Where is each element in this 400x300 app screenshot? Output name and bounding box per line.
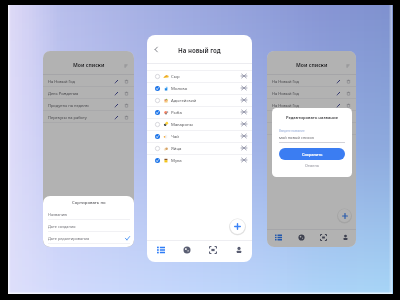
staticText: Мука	[171, 157, 182, 163]
button[interactable]: День Рождения	[43, 87, 134, 99]
staticText: На Новый Год	[272, 115, 300, 120]
button[interactable]: Молоко	[147, 82, 252, 94]
button[interactable]: На Новый Год	[267, 123, 356, 135]
staticText: На Новый Год	[272, 79, 300, 84]
button[interactable]: Reorder	[240, 96, 248, 104]
button[interactable]: Profile	[226, 241, 252, 258]
button[interactable]: На Новый Год	[43, 75, 134, 87]
staticText: Редактировать название	[279, 115, 345, 121]
button[interactable]: Reorder	[240, 72, 248, 80]
button[interactable]: Edit	[112, 113, 120, 121]
button[interactable]: Delete	[344, 101, 352, 109]
button[interactable]: Чай	[147, 130, 252, 142]
staticText: Перекусы на работу	[48, 115, 87, 120]
staticText: Сохранить	[302, 152, 323, 157]
button[interactable]: Back	[151, 44, 162, 55]
staticText: Адыгейский	[171, 97, 197, 103]
button[interactable]: Add	[338, 209, 351, 222]
staticText: Мои списки	[296, 62, 328, 69]
button[interactable]: Edit	[112, 101, 120, 109]
button[interactable]: Дате редактирования	[43, 232, 134, 244]
button[interactable]: Scan	[200, 241, 226, 258]
button[interactable]: Edit	[334, 101, 342, 109]
button[interactable]: Delete	[122, 77, 130, 85]
staticText: День Рождения	[48, 91, 79, 96]
staticText: Молоко	[171, 85, 188, 91]
button[interactable]: Перекусы на работу	[43, 111, 134, 123]
button[interactable]: Delete	[122, 113, 130, 121]
staticText: Введите название	[279, 129, 305, 133]
button[interactable]: Add	[230, 219, 245, 234]
staticText: Макароны	[171, 121, 193, 127]
button[interactable]: Scan	[312, 230, 334, 244]
staticText: На Новый Год	[272, 91, 300, 96]
button[interactable]: Edit	[334, 77, 342, 85]
staticText: Рыба	[171, 109, 182, 115]
button[interactable]: Explore	[174, 241, 200, 258]
button[interactable]: На Новый Год	[267, 87, 356, 99]
staticText: Названию	[48, 212, 68, 217]
button[interactable]: Explore	[290, 230, 312, 244]
staticText: На новый год	[178, 46, 221, 54]
button[interactable]: Edit	[334, 89, 342, 97]
button[interactable]: Reorder	[240, 108, 248, 116]
button[interactable]: На Новый Год	[267, 99, 356, 111]
button[interactable]: Sort	[122, 62, 129, 69]
button[interactable]: Delete	[122, 89, 130, 97]
button[interactable]: Reorder	[240, 156, 248, 164]
button[interactable]: Delete	[122, 101, 130, 109]
button[interactable]: Profile	[334, 230, 356, 244]
staticText: Мои списки	[73, 62, 105, 69]
staticText: Отмена	[305, 163, 319, 168]
staticText: Сыр	[171, 73, 180, 79]
staticText: Сортировать по	[72, 199, 106, 205]
button[interactable]: Edit	[112, 77, 120, 85]
staticText: Чай	[171, 133, 179, 139]
staticText: Дате создания	[48, 224, 76, 229]
button[interactable]: Delete	[344, 77, 352, 85]
button[interactable]: Сыр	[147, 70, 252, 82]
button[interactable]: Адыгейский	[147, 94, 252, 106]
button[interactable]: Reorder	[240, 144, 248, 152]
button[interactable]: Макароны	[147, 118, 252, 130]
button[interactable]: Названию	[43, 208, 134, 220]
button[interactable]: Delete	[344, 89, 352, 97]
staticText: На Новый Год	[48, 79, 76, 84]
staticText: Продукты на неделю	[48, 103, 89, 108]
staticText: На Новый Год	[272, 103, 300, 108]
button[interactable]: Lists	[267, 230, 290, 244]
staticText: Дате редактирования	[48, 236, 90, 241]
button[interactable]: Reorder	[240, 84, 248, 92]
staticText: На Новый Год	[272, 127, 300, 132]
button[interactable]: На Новый Год	[267, 75, 356, 87]
button[interactable]: Продукты на неделю	[43, 99, 134, 111]
button[interactable]: Reorder	[240, 132, 248, 140]
staticText: мой новый список	[279, 135, 314, 140]
button[interactable]: Edit	[334, 113, 342, 121]
button[interactable]: Мука	[147, 154, 252, 166]
button[interactable]: Сохранить	[279, 148, 345, 160]
button[interactable]: Рыба	[147, 106, 252, 118]
staticText: Яйца	[171, 145, 182, 151]
button[interactable]: Edit	[112, 89, 120, 97]
button[interactable]: Дате создания	[43, 220, 134, 232]
button[interactable]: Reorder	[240, 120, 248, 128]
button[interactable]: Sort	[344, 62, 351, 69]
button[interactable]: Отмена	[279, 163, 345, 168]
button[interactable]: На Новый Год	[267, 111, 356, 123]
button[interactable]: Яйца	[147, 142, 252, 154]
button[interactable]: Lists	[147, 241, 174, 258]
